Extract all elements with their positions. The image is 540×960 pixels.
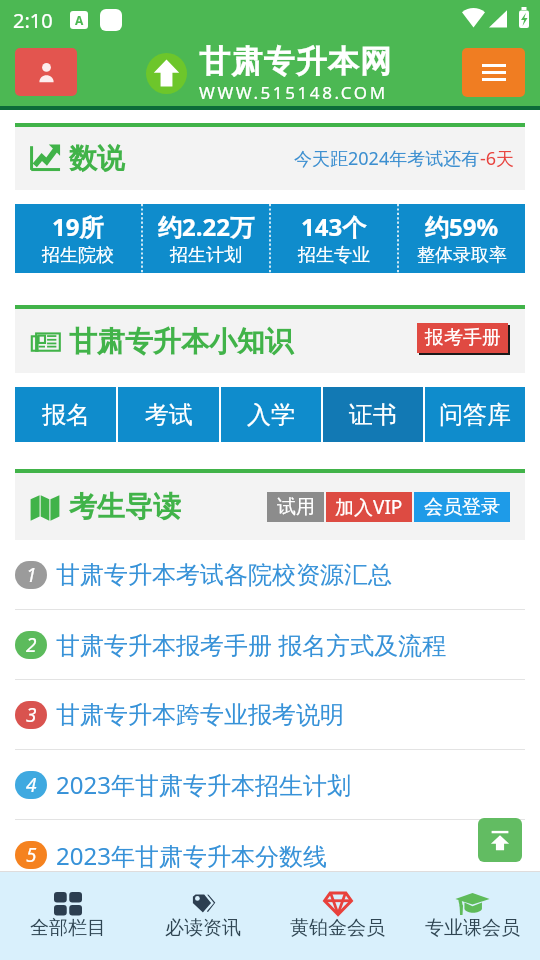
staticText: 专业课会员 [425, 916, 520, 940]
staticText: 2:10 [13, 7, 53, 34]
staticText: 甘肃专升本小知识 [69, 324, 293, 359]
button[interactable]: User profile [15, 48, 77, 96]
staticText: 报考手册 [425, 326, 501, 350]
staticText: 5 [26, 842, 37, 868]
button[interactable]: 约2.22万 [143, 204, 269, 273]
button[interactable]: 1 [15, 540, 525, 609]
button[interactable]: 报考手册 [417, 323, 508, 353]
button[interactable]: 约59% [399, 204, 525, 273]
staticText: 数说 [69, 141, 125, 176]
button[interactable]: Scroll to top [478, 818, 522, 862]
staticText: 整体录取率 [417, 244, 507, 267]
button[interactable]: 必读资讯 [135, 872, 270, 960]
button[interactable]: 全部栏目 [0, 872, 135, 960]
button[interactable]: 19所 [15, 204, 141, 273]
staticText: 报名 [42, 400, 90, 430]
staticText: 招生专业 [298, 244, 370, 267]
button[interactable]: 试用 [267, 492, 324, 522]
staticText: 甘肃专升本网 [199, 42, 393, 81]
staticText: 约59% [425, 210, 499, 243]
button[interactable]: 143个 [271, 204, 397, 273]
staticText: 143个 [301, 210, 367, 243]
staticText: 今天距2024年考试还有 [294, 146, 480, 171]
button[interactable]: Menu [462, 48, 525, 97]
button[interactable]: 入学 [221, 387, 321, 442]
button[interactable]: 考试 [118, 387, 219, 442]
staticText: 考生导读 [69, 489, 181, 524]
button[interactable]: 会员登录 [414, 492, 510, 522]
staticText: A [75, 12, 84, 28]
button[interactable]: 证书 [323, 387, 423, 442]
staticText: 会员登录 [424, 495, 500, 519]
staticText: 甘肃专升本考试各院校资源汇总 [56, 560, 392, 590]
button[interactable]: 报名 [15, 387, 116, 442]
staticText: 黄铂金会员 [290, 916, 385, 940]
button[interactable]: 问答库 [425, 387, 525, 442]
staticText: 证书 [349, 400, 397, 430]
staticText: 甘肃专升本跨专业报考说明 [56, 700, 344, 730]
staticText: 4 [26, 772, 37, 798]
staticText: 加入VIP [335, 494, 403, 520]
staticText: 2023年甘肃专升本分数线 [56, 839, 327, 872]
staticText: 考试 [145, 400, 193, 430]
staticText: 2023年甘肃专升本招生计划 [56, 768, 351, 801]
button[interactable]: 2 [15, 610, 525, 679]
staticText: 试用 [277, 495, 315, 519]
staticText: 问答库 [439, 400, 511, 430]
staticText: 招生计划 [170, 244, 242, 267]
staticText: 2 [26, 632, 37, 658]
staticText: 3 [26, 702, 37, 728]
staticText: 入学 [247, 400, 295, 430]
button[interactable]: 4 [15, 750, 525, 819]
staticText: 19所 [52, 210, 104, 243]
staticText: 必读资讯 [165, 916, 241, 940]
button[interactable]: 黄铂金会员 [270, 872, 405, 960]
button[interactable]: 专业课会员 [405, 872, 540, 960]
staticText: 招生院校 [42, 244, 114, 267]
button[interactable]: 5 [15, 820, 525, 890]
staticText: 甘肃专升本报考手册 报名方式及流程 [56, 628, 447, 661]
button[interactable]: 加入VIP [326, 492, 412, 522]
staticText: 全部栏目 [30, 916, 106, 940]
staticText: WWW.515148.COM [199, 81, 388, 104]
staticText: 1 [26, 562, 37, 588]
staticText: 约2.22万 [158, 210, 254, 243]
staticText: -6天 [480, 146, 515, 171]
button[interactable]: 3 [15, 680, 525, 749]
